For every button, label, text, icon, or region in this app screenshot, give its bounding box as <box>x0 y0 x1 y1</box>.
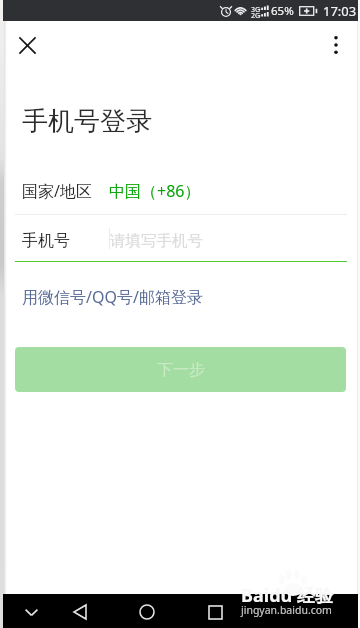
staticText: jingyan.baidu.com <box>241 603 332 617</box>
staticText: 中国（+86） <box>109 180 201 202</box>
button[interactable]: 下一步 <box>15 347 346 392</box>
button[interactable]: 国家/地区 <box>0 176 360 206</box>
staticText: 17:03 <box>323 2 357 20</box>
staticText: 下一步 <box>157 360 205 380</box>
staticText: 国家/地区 <box>22 180 92 202</box>
staticText: 手机号登录 <box>22 105 152 138</box>
button[interactable]: Home <box>130 595 164 628</box>
button[interactable]: Hide keyboard <box>14 595 48 628</box>
staticText: 3G <box>251 5 261 15</box>
button[interactable]: Close <box>5 23 49 67</box>
staticText: Baidu 经验 <box>241 583 333 608</box>
button[interactable]: 用微信号/QQ号/邮箱登录 <box>22 286 203 308</box>
staticText: 请填写手机号 <box>110 231 203 251</box>
staticText: 65% <box>271 3 294 19</box>
staticText: 手机号 <box>22 231 70 251</box>
button[interactable]: Recents <box>198 595 232 628</box>
staticText: 2G <box>251 11 261 21</box>
button[interactable]: More options <box>314 23 358 67</box>
button[interactable]: Back <box>63 595 97 628</box>
